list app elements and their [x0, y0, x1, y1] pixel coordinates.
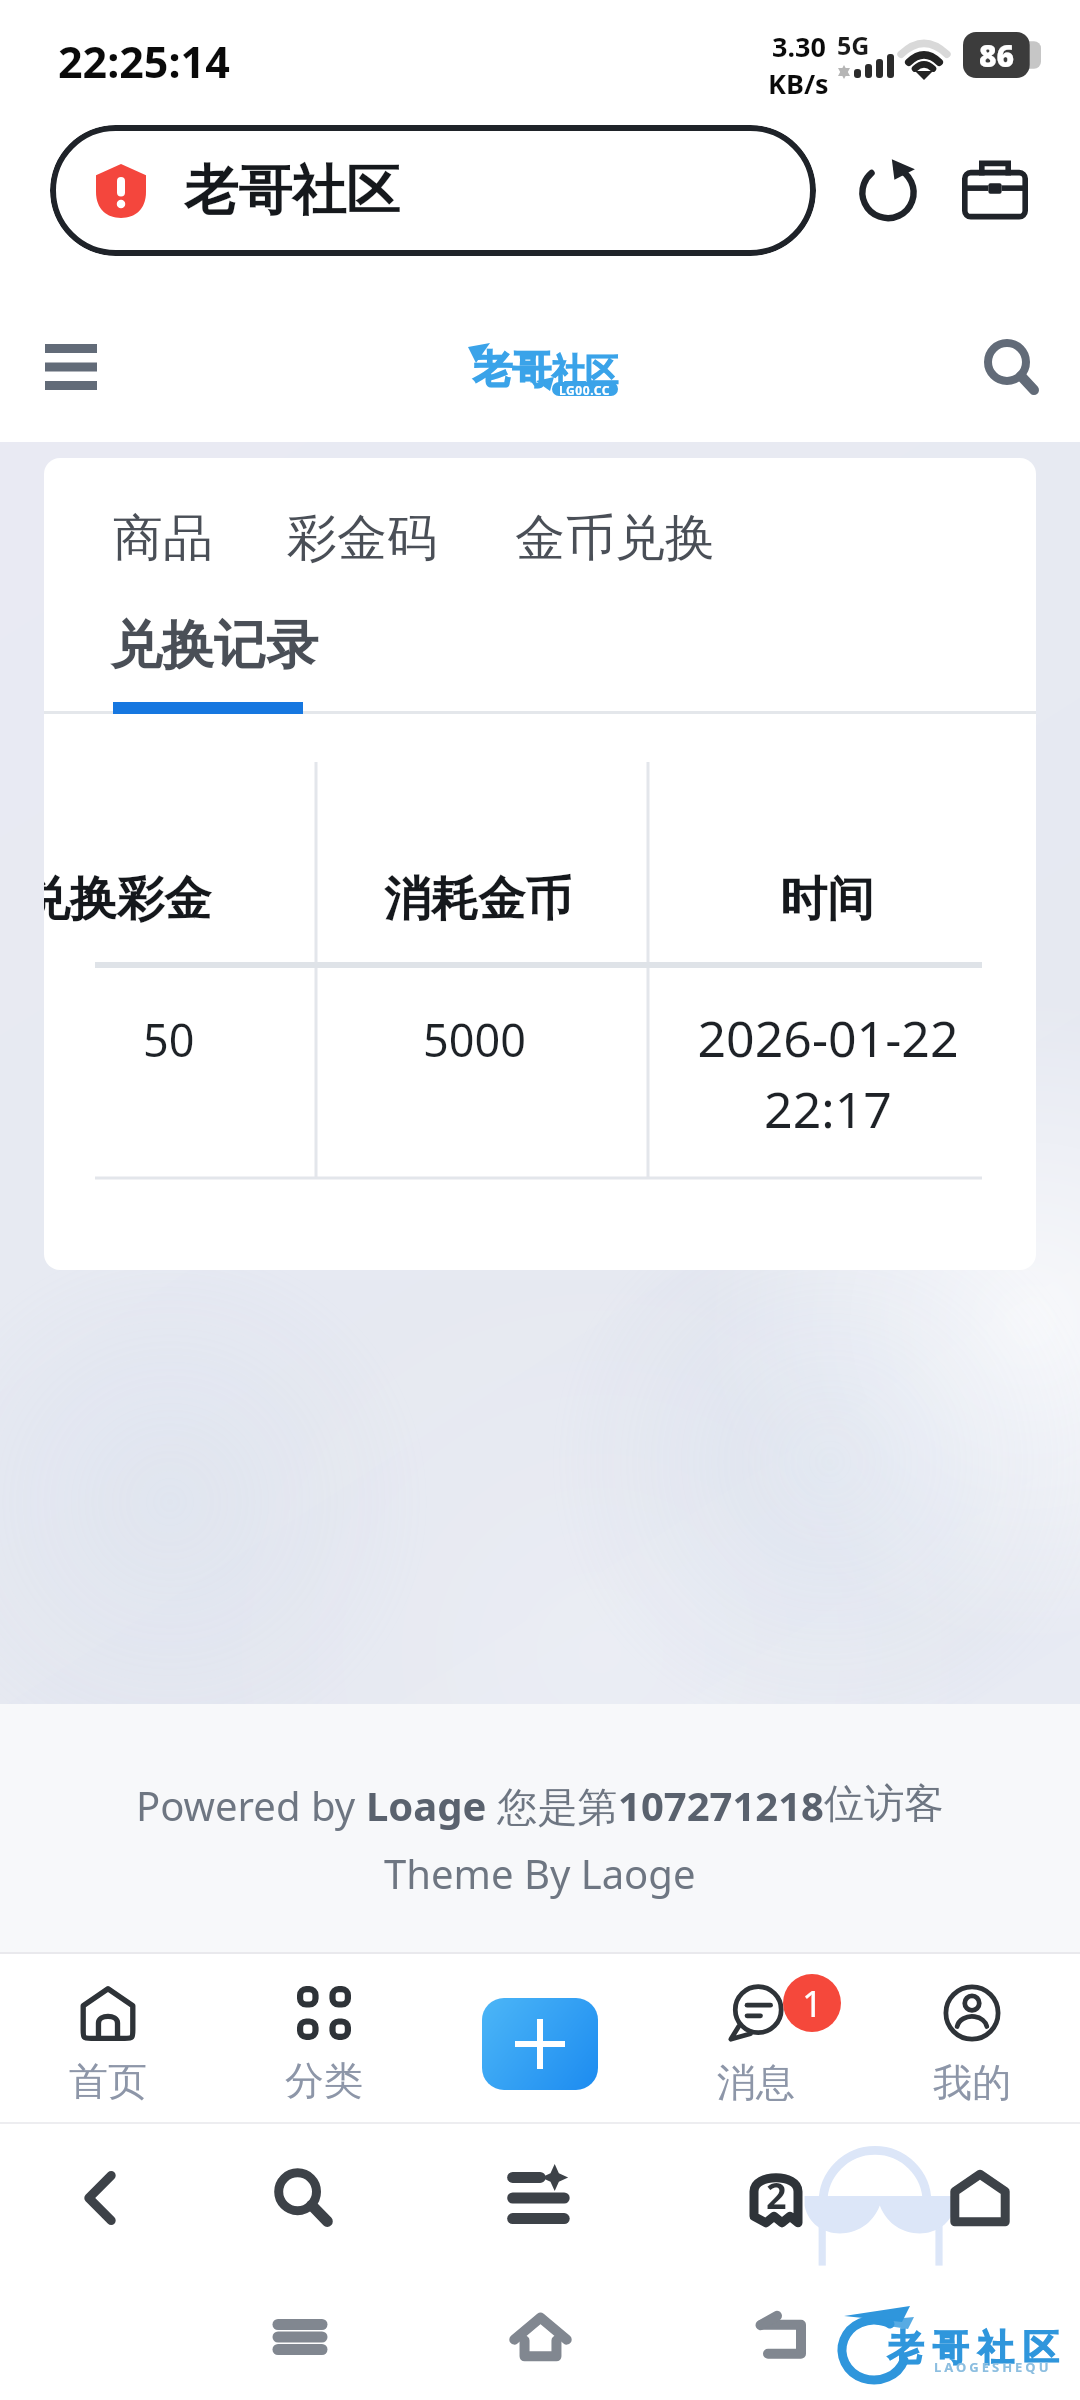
staticText: 时间	[780, 870, 874, 929]
staticText: 首页	[69, 2057, 147, 2106]
staticText: LG00.CC	[559, 382, 611, 396]
button[interactable]: 兑换记录	[110, 613, 318, 679]
staticText: 位访客	[824, 1778, 944, 1828]
button[interactable]: 分类	[216, 1960, 432, 2130]
button[interactable]: Home	[920, 2119, 1040, 2277]
staticText: 2	[766, 2171, 787, 2220]
staticText: 消息	[717, 2058, 795, 2107]
button[interactable]: 彩金码	[287, 507, 437, 570]
button[interactable]: Add	[482, 1998, 598, 2090]
staticText: KB/s	[768, 65, 829, 102]
button[interactable]: Search	[243, 2119, 363, 2277]
staticText: 兑换记录	[110, 613, 318, 679]
staticText: 2026-01-22 22:17	[663, 1004, 993, 1143]
staticText: 消耗金币	[384, 870, 572, 929]
button[interactable]: Menu	[18, 314, 123, 419]
staticText: 5000	[423, 1009, 526, 1070]
button[interactable]: 商品	[113, 507, 213, 570]
button[interactable]: 首页	[0, 1960, 216, 2130]
staticText: LAOGESHEQU	[934, 2358, 1052, 2376]
button[interactable]: Back	[723, 2277, 843, 2397]
staticText: 107271218	[618, 1778, 824, 1832]
button[interactable]: 1	[648, 1960, 864, 2130]
button[interactable]: 我的	[864, 1960, 1080, 2130]
staticText: 86	[979, 35, 1015, 76]
staticText: 老哥社区	[883, 2325, 1063, 2370]
staticText: 我的	[933, 2058, 1011, 2107]
button[interactable]: Menu	[479, 2119, 599, 2277]
staticText: 50	[143, 1009, 195, 1070]
button[interactable]: 老哥社区	[50, 125, 816, 256]
staticText: 您是第	[487, 1778, 618, 1833]
button[interactable]: Tabs	[716, 2119, 836, 2277]
button[interactable]: Reload	[828, 130, 948, 250]
button[interactable]: 金币兑换	[515, 507, 715, 570]
staticText: 22:25:14	[58, 32, 230, 91]
button[interactable]: Toolbox	[935, 130, 1055, 250]
button[interactable]: Search	[958, 317, 1063, 422]
staticText: 1	[802, 1979, 823, 2028]
staticText: 老哥	[473, 345, 551, 394]
staticText: 分类	[285, 2056, 363, 2105]
staticText: 3.30	[772, 28, 826, 65]
staticText: 金币兑换	[515, 507, 715, 570]
button[interactable]: Back	[40, 2119, 160, 2277]
staticText: 老哥社区	[184, 157, 400, 225]
staticText: Loage	[366, 1778, 487, 1832]
staticText: 彩金码	[287, 507, 437, 570]
button[interactable]: Recents	[240, 2277, 360, 2397]
staticText: Powered by	[136, 1778, 366, 1832]
staticText: 商品	[113, 507, 213, 570]
button[interactable]: Home	[480, 2277, 600, 2397]
staticText: Theme By Laoge	[384, 1846, 696, 1900]
staticText: 社区	[552, 350, 618, 392]
staticText: 兑换彩金	[44, 870, 211, 929]
staticText: 5G	[837, 28, 870, 62]
